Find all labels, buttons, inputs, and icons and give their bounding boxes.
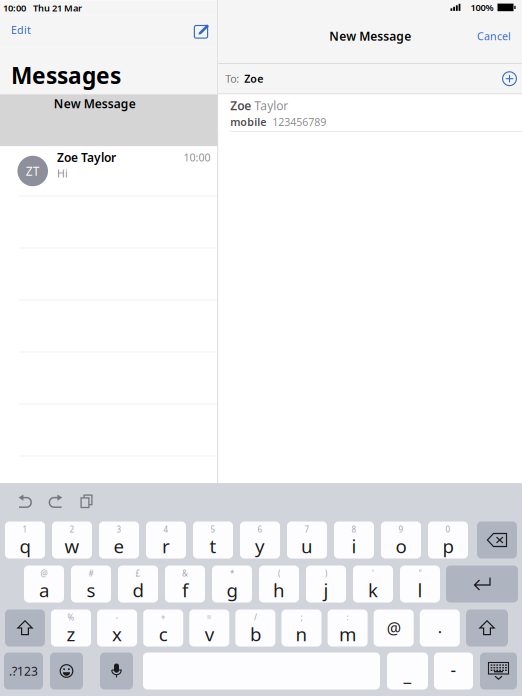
button[interactable]: - bbox=[434, 652, 473, 689]
button[interactable]: Delete bbox=[477, 521, 517, 558]
staticText: & bbox=[182, 568, 188, 579]
staticText: + bbox=[161, 612, 166, 623]
button[interactable]: Edit bbox=[0, 15, 39, 47]
staticText: f bbox=[182, 578, 188, 602]
button[interactable]: % bbox=[51, 609, 91, 646]
button[interactable]: New Message bbox=[0, 95, 217, 146]
button[interactable]: / bbox=[235, 609, 275, 646]
button[interactable]: 3 bbox=[99, 521, 139, 558]
button[interactable]: 8 bbox=[334, 521, 374, 558]
staticText: s bbox=[86, 578, 95, 602]
staticText: w bbox=[64, 534, 79, 558]
button[interactable]: Compose bbox=[186, 15, 217, 47]
button[interactable]: @ bbox=[24, 565, 64, 602]
staticText: e bbox=[113, 534, 124, 558]
button[interactable]: Shift bbox=[5, 609, 45, 646]
staticText: b bbox=[250, 622, 261, 646]
button[interactable]: 6 bbox=[240, 521, 280, 558]
staticText: 10:00 bbox=[183, 150, 210, 164]
staticText: 5 bbox=[210, 524, 215, 535]
button[interactable]: @ bbox=[374, 609, 414, 646]
staticText: t bbox=[209, 534, 216, 558]
staticText: p bbox=[442, 534, 453, 558]
staticText: 1 bbox=[22, 524, 27, 535]
button[interactable]: Copy bbox=[74, 489, 100, 513]
button[interactable]: ' bbox=[353, 565, 393, 602]
button[interactable]: Shift bbox=[466, 609, 508, 646]
button[interactable]: Dictate bbox=[100, 652, 133, 689]
button[interactable]: .?123 bbox=[4, 652, 43, 689]
button[interactable]: ) bbox=[306, 565, 346, 602]
button[interactable]: + bbox=[143, 609, 183, 646]
staticText: 6 bbox=[257, 524, 262, 535]
button[interactable]: 9 bbox=[381, 521, 421, 558]
button[interactable]: : bbox=[328, 609, 368, 646]
button[interactable]: . bbox=[420, 609, 460, 646]
staticText: ; bbox=[300, 612, 302, 623]
button[interactable]: - bbox=[97, 609, 137, 646]
staticText: Zoe bbox=[230, 98, 251, 114]
staticText: m bbox=[339, 622, 356, 646]
staticText: ) bbox=[325, 568, 327, 579]
staticText: Cancel bbox=[477, 29, 511, 43]
button[interactable]: " bbox=[400, 565, 440, 602]
staticText: v bbox=[205, 622, 214, 646]
staticText: Taylor bbox=[251, 98, 288, 114]
staticText: 123456789 bbox=[266, 115, 326, 129]
staticText: r bbox=[162, 534, 170, 558]
staticText: x bbox=[112, 622, 122, 646]
button[interactable]: 4 bbox=[146, 521, 186, 558]
button[interactable]: ( bbox=[259, 565, 299, 602]
staticText: l bbox=[417, 578, 422, 602]
staticText: 4 bbox=[163, 524, 168, 535]
button[interactable]: 2 bbox=[52, 521, 92, 558]
staticText: £ bbox=[135, 568, 140, 579]
staticText: ' bbox=[372, 568, 374, 579]
button[interactable]: ; bbox=[281, 609, 321, 646]
button[interactable]: Redo bbox=[43, 489, 69, 513]
button[interactable]: # bbox=[71, 565, 111, 602]
button[interactable]: * bbox=[212, 565, 252, 602]
staticText: Messages bbox=[11, 60, 121, 90]
staticText: 3 bbox=[116, 524, 121, 535]
staticText: u bbox=[301, 534, 313, 558]
staticText: 100% bbox=[470, 1, 493, 14]
button[interactable]: = bbox=[189, 609, 229, 646]
staticText: . bbox=[438, 616, 442, 638]
staticText: " bbox=[418, 568, 421, 579]
staticText: y bbox=[255, 534, 265, 558]
button[interactable]: Space bbox=[143, 652, 380, 689]
staticText: Hi bbox=[57, 166, 68, 180]
button[interactable]: Add contact bbox=[498, 64, 521, 93]
staticText: o bbox=[395, 534, 406, 558]
staticText: .?123 bbox=[9, 663, 38, 679]
staticText: - bbox=[450, 658, 456, 681]
button[interactable]: Emoji bbox=[50, 652, 83, 689]
button[interactable]: Cancel bbox=[466, 15, 522, 57]
staticText: ( bbox=[278, 568, 280, 579]
button[interactable]: Undo bbox=[12, 489, 38, 513]
button[interactable]: 5 bbox=[193, 521, 233, 558]
button[interactable]: 0 bbox=[428, 521, 468, 558]
button[interactable]: 1 bbox=[5, 521, 45, 558]
staticText: # bbox=[88, 568, 93, 579]
staticText: Thu 21 Mar bbox=[33, 2, 82, 14]
button[interactable]: ZT bbox=[0, 146, 217, 196]
staticText: Edit bbox=[11, 23, 31, 37]
button[interactable]: _ bbox=[387, 652, 428, 689]
staticText: g bbox=[226, 578, 237, 602]
staticText: h bbox=[273, 578, 285, 602]
staticText: - bbox=[116, 612, 119, 623]
staticText: a bbox=[39, 578, 49, 602]
button[interactable]: £ bbox=[118, 565, 158, 602]
staticText: ZT bbox=[26, 163, 40, 179]
button[interactable]: & bbox=[165, 565, 205, 602]
button[interactable]: Hide keyboard bbox=[480, 652, 517, 689]
staticText: 9 bbox=[398, 524, 403, 535]
button[interactable]: Zoe bbox=[218, 94, 522, 131]
button[interactable]: 7 bbox=[287, 521, 327, 558]
staticText: mobile bbox=[230, 115, 266, 129]
staticText: : bbox=[347, 612, 349, 623]
staticText: To: bbox=[225, 72, 239, 86]
button[interactable]: Return bbox=[446, 565, 518, 602]
